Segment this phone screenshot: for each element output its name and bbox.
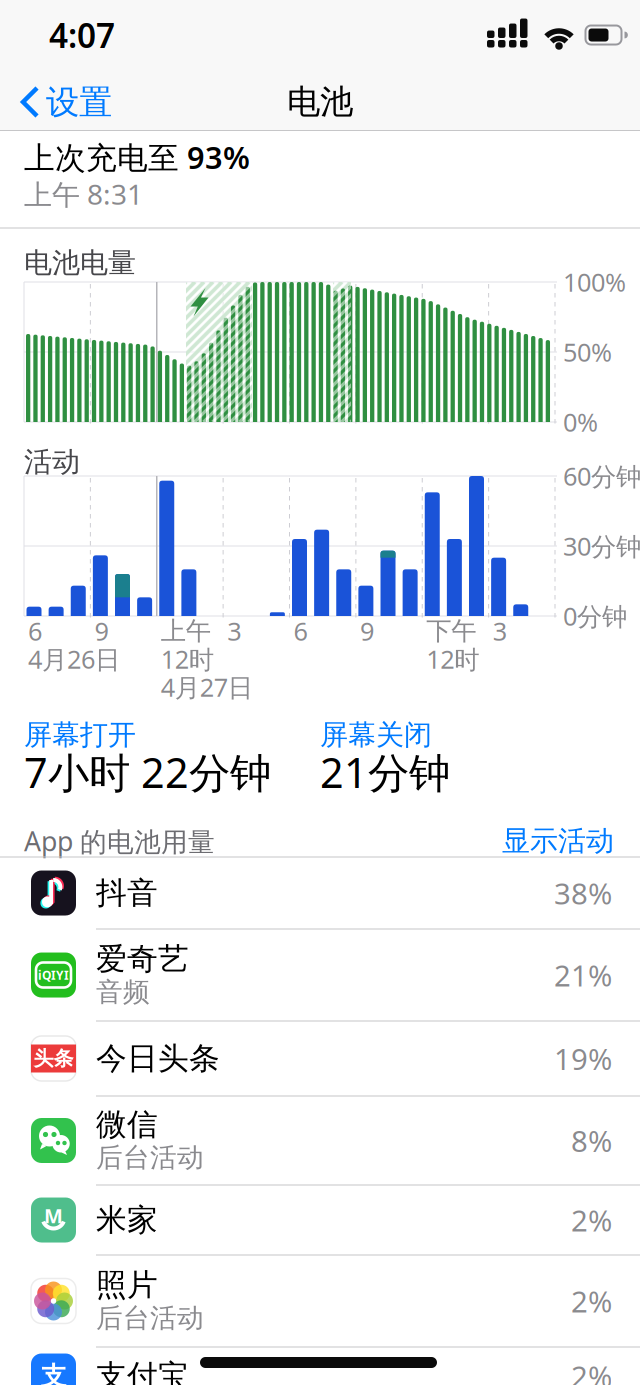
- button[interactable]: 支: [0, 1347, 640, 1385]
- staticText: 电池: [287, 81, 353, 122]
- staticText: 4:07: [49, 13, 115, 57]
- staticText: 2%: [571, 1281, 612, 1320]
- staticText: 音频: [96, 976, 150, 1008]
- staticText: 支付宝: [96, 1357, 189, 1385]
- staticText: 上午: [161, 615, 211, 646]
- button[interactable]: 抖音: [0, 857, 640, 929]
- staticText: 后台活动: [96, 1141, 204, 1174]
- button[interactable]: 显示活动: [502, 824, 614, 858]
- staticText: 头条: [33, 1046, 73, 1071]
- button[interactable]: 头条: [0, 1021, 640, 1096]
- staticText: 12时: [161, 642, 214, 676]
- staticText: 3: [227, 614, 241, 648]
- staticText: App 的电池用量: [24, 823, 215, 859]
- staticText: 屏幕打开: [24, 718, 136, 752]
- button[interactable]: iQIYI: [0, 929, 640, 1021]
- staticText: 上午 8:31: [24, 175, 143, 213]
- staticText: 照片: [96, 1266, 158, 1304]
- staticText: 38%: [554, 873, 612, 912]
- staticText: 60分钟: [563, 459, 640, 493]
- staticText: 设置: [46, 82, 112, 123]
- staticText: 50%: [563, 335, 612, 369]
- staticText: 9: [94, 614, 108, 648]
- button[interactable]: 照片: [0, 1255, 640, 1347]
- staticText: 4月26日: [28, 642, 120, 676]
- staticText: 支: [41, 1360, 66, 1385]
- staticText: 7小时 22分钟: [24, 745, 271, 799]
- staticText: 显示活动: [502, 824, 614, 858]
- staticText: 12时: [426, 642, 479, 676]
- staticText: 抖音: [96, 874, 158, 912]
- staticText: 19%: [554, 1039, 612, 1078]
- staticText: 爱奇艺: [96, 940, 189, 978]
- button[interactable]: 返回设置: [16, 72, 126, 132]
- staticText: 下午: [426, 615, 476, 646]
- button[interactable]: 微信: [0, 1096, 640, 1185]
- staticText: 3: [493, 614, 507, 648]
- staticText: M: [44, 1202, 63, 1229]
- staticText: 2%: [571, 1200, 612, 1239]
- staticText: 21分钟: [320, 745, 450, 799]
- staticText: 今日头条: [96, 1040, 220, 1077]
- button[interactable]: M: [0, 1185, 640, 1255]
- staticText: 100%: [563, 265, 626, 299]
- staticText: 30分钟: [563, 529, 640, 563]
- staticText: 21%: [554, 955, 612, 994]
- staticText: 8%: [571, 1121, 612, 1160]
- staticText: 上次充电至 93%: [24, 137, 250, 177]
- staticText: 米家: [96, 1201, 158, 1239]
- staticText: 6: [28, 614, 42, 648]
- staticText: 6: [293, 614, 307, 648]
- staticText: 4月27日: [161, 670, 253, 704]
- staticText: 电池电量: [24, 246, 136, 280]
- staticText: 0分钟: [563, 599, 627, 633]
- staticText: 微信: [96, 1106, 158, 1143]
- staticText: 9: [360, 614, 374, 648]
- staticText: 0%: [563, 405, 598, 439]
- staticText: iQIYI: [38, 967, 69, 983]
- staticText: 后台活动: [96, 1302, 204, 1334]
- staticText: 屏幕关闭: [320, 718, 432, 752]
- staticText: 2%: [571, 1356, 612, 1385]
- staticText: 活动: [24, 445, 80, 479]
